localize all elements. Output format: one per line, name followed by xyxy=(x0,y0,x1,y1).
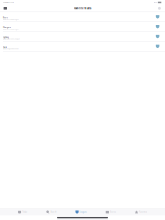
staticText: National Hockey League xyxy=(3,38,20,40)
button[interactable]: Scores xyxy=(104,209,117,215)
button[interactable]: Lightning xyxy=(0,32,165,41)
staticText: Favorite Teams xyxy=(74,7,91,10)
staticText: Major League Baseball xyxy=(3,48,18,49)
staticText: National Football League xyxy=(3,19,19,20)
button[interactable]: Favorites xyxy=(134,209,148,215)
button[interactable]: Bears xyxy=(0,12,165,21)
staticText: Giants xyxy=(3,46,7,48)
staticText: 100% xyxy=(154,2,157,3)
button[interactable]: Chargers xyxy=(0,22,165,31)
button[interactable]: Leagues xyxy=(74,209,88,215)
staticText: Leagues xyxy=(80,211,87,213)
staticText: Chargers xyxy=(3,27,11,28)
staticText: 9:41 AM Mon Jun 10 xyxy=(3,2,14,3)
button[interactable]: Search xyxy=(45,209,57,215)
staticText: Today xyxy=(22,211,27,213)
staticText: National Football League xyxy=(3,28,19,30)
button[interactable]: Show sidebar xyxy=(3,7,7,10)
staticText: Bears xyxy=(3,17,8,18)
button[interactable]: Edit favorites xyxy=(158,7,161,10)
button[interactable]: Today xyxy=(17,209,28,215)
staticText: Search xyxy=(50,211,56,213)
button[interactable]: Giants xyxy=(0,42,165,51)
staticText: Lightning xyxy=(3,36,9,38)
